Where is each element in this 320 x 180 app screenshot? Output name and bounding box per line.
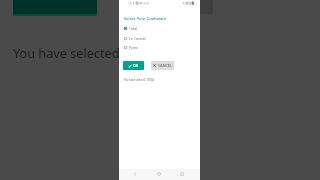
staticText: CANCEL <box>158 63 172 68</box>
button[interactable]: Back <box>132 171 138 177</box>
button[interactable]: Recent apps <box>179 171 185 177</box>
button[interactable]: Total <box>123 25 163 32</box>
button[interactable]: CANCEL <box>151 61 174 70</box>
staticText: Select Your Cookware <box>124 16 167 22</box>
button[interactable]: Le Creuset <box>123 35 163 42</box>
button[interactable]: Home <box>156 171 162 177</box>
button[interactable]: Pyrex <box>123 44 163 51</box>
staticText: You have selected <box>13 44 120 61</box>
staticText: Total <box>129 26 137 31</box>
staticText: Pyrex <box>129 45 138 50</box>
button[interactable]: OK <box>123 61 144 70</box>
staticText: Le Creuset <box>129 36 146 41</box>
staticText: You have selected 'TOTAL' <box>124 78 155 81</box>
staticText: OK <box>133 63 139 68</box>
